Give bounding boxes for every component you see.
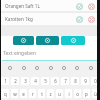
staticText: r: [32, 91, 34, 97]
button[interactable]: Keyboard tool 5: [73, 64, 80, 71]
button[interactable]: w: [11, 89, 18, 98]
button[interactable]: Keyboard tool 0: [6, 64, 13, 71]
staticText: 5: [44, 78, 47, 84]
button[interactable]: Keyboard tool 3: [47, 64, 54, 71]
staticText: 3: [24, 78, 27, 84]
staticText: 2: [14, 78, 17, 84]
button[interactable]: Delete item: [87, 15, 95, 23]
button[interactable]: 2: [11, 77, 19, 85]
staticText: z: [49, 91, 52, 97]
staticText: 4: [34, 78, 37, 84]
button[interactable]: ü: [92, 89, 99, 98]
button[interactable]: Keyboard tool 2: [33, 64, 40, 71]
staticText: Text eingeben: [3, 50, 36, 57]
button[interactable]: i: [65, 89, 72, 98]
staticText: i: [68, 91, 70, 97]
staticText: e: [22, 91, 25, 97]
staticText: 8: [74, 78, 77, 84]
button[interactable]: z: [47, 89, 54, 98]
button[interactable]: Karotten 1kg: [0, 13, 100, 25]
button[interactable]: Scan item: [36, 36, 59, 45]
button[interactable]: Mark bought: [75, 2, 83, 10]
staticText: 0: [94, 78, 97, 84]
button[interactable]: Keyboard tool 1: [20, 64, 27, 71]
staticText: p: [85, 91, 88, 97]
button[interactable]: Keyboard tool 6: [87, 64, 94, 71]
button[interactable]: q: [1, 89, 9, 98]
staticText: ü: [94, 91, 97, 97]
button[interactable]: e: [20, 89, 27, 98]
staticText: u: [58, 91, 61, 97]
button[interactable]: 8: [71, 77, 79, 85]
button[interactable]: Mark bought: [75, 15, 83, 23]
button[interactable]: 5: [41, 77, 49, 85]
button[interactable]: 4: [31, 77, 39, 85]
button[interactable]: t: [38, 89, 45, 98]
button[interactable]: o: [74, 89, 81, 98]
button[interactable]: 1: [1, 77, 9, 85]
button[interactable]: Delete item: [87, 2, 95, 10]
button[interactable]: 3: [21, 77, 29, 85]
staticText: 6: [54, 78, 57, 84]
staticText: Karotten 1kg: [5, 16, 33, 22]
button[interactable]: Add item: [13, 36, 34, 45]
button[interactable]: p: [83, 89, 90, 98]
staticText: Orangen Saft 1L: [5, 3, 40, 9]
staticText: o: [76, 91, 79, 97]
button[interactable]: 0: [91, 77, 99, 85]
staticText: q: [4, 91, 7, 97]
staticText: 7: [64, 78, 67, 84]
button[interactable]: 6: [51, 77, 59, 85]
staticText: 1: [4, 78, 7, 84]
button[interactable]: Keyboard tool 4: [60, 64, 67, 71]
button[interactable]: u: [56, 89, 63, 98]
button[interactable]: Send: [61, 36, 85, 45]
staticText: 9: [84, 78, 87, 84]
button[interactable]: Text eingeben: [3, 45, 100, 57]
button[interactable]: r: [29, 89, 36, 98]
button[interactable]: 7: [61, 77, 69, 85]
staticText: t: [41, 91, 43, 97]
button[interactable]: Orangen Saft 1L: [0, 0, 100, 11]
button[interactable]: 9: [81, 77, 89, 85]
staticText: w: [13, 91, 17, 97]
